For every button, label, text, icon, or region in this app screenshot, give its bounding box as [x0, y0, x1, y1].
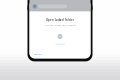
- staticText: Touch sensor: [54, 43, 65, 45]
- button[interactable]: Use PIN: [33, 52, 43, 57]
- staticText: Use your screen lock to unlock: [44, 24, 75, 27]
- staticText: Use PIN: [34, 53, 42, 56]
- staticText: Open Locked Folder: [46, 18, 74, 22]
